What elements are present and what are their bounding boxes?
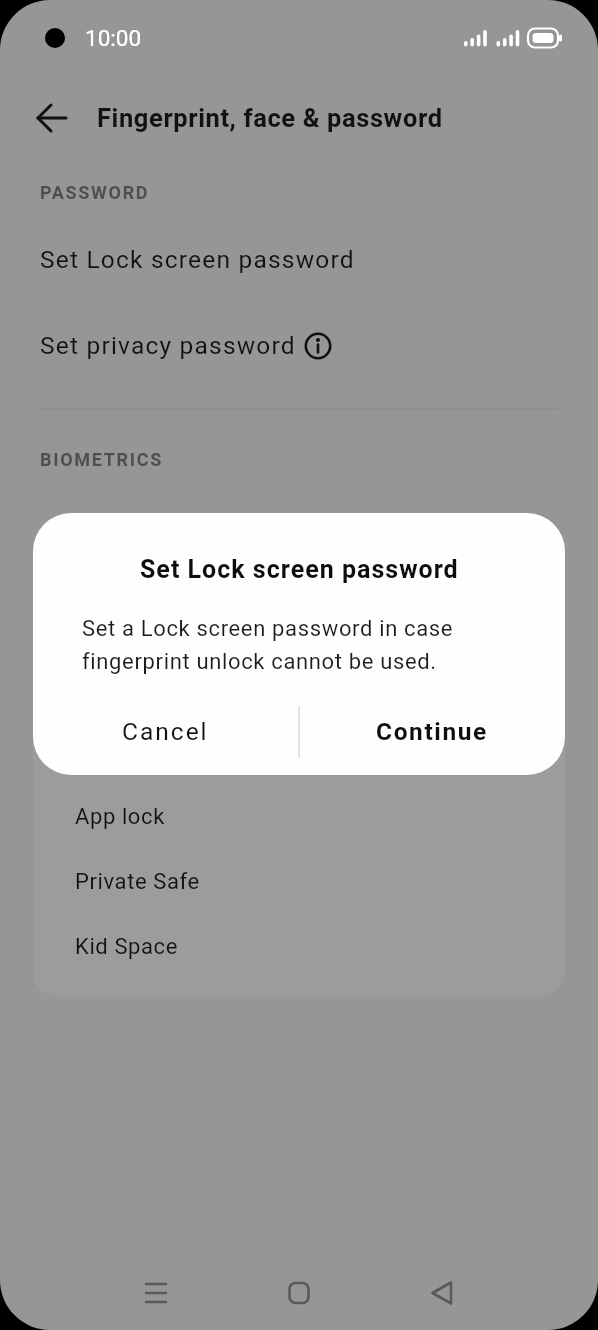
- staticText: Set privacy password: [40, 331, 296, 360]
- button[interactable]: Kid Space: [75, 922, 565, 972]
- staticText: Cancel: [122, 717, 209, 746]
- staticText: PASSWORD: [40, 182, 150, 203]
- staticText: Continue: [376, 717, 488, 746]
- button[interactable]: Continue: [299, 706, 565, 756]
- button[interactable]: [419, 1271, 463, 1315]
- staticText: Set a Lock screen password in case finge…: [82, 616, 454, 674]
- staticText: Set Lock screen password: [140, 555, 459, 584]
- button[interactable]: Set privacy password: [40, 320, 558, 370]
- staticText: BIOMETRICS: [40, 449, 163, 470]
- button[interactable]: Set Lock screen password: [40, 234, 558, 284]
- button[interactable]: [30, 100, 74, 136]
- staticText: Kid Space: [75, 934, 178, 960]
- staticText: Fingerprint, face & password: [97, 103, 443, 133]
- staticText: Private Safe: [75, 869, 200, 895]
- button[interactable]: Cancel: [33, 706, 298, 756]
- button[interactable]: [134, 1271, 178, 1315]
- button[interactable]: App lock: [75, 792, 565, 842]
- staticText: App lock: [75, 804, 165, 830]
- button[interactable]: Private Safe: [75, 857, 565, 907]
- button[interactable]: [277, 1271, 321, 1315]
- staticText: 10:00: [85, 25, 142, 51]
- staticText: Set Lock screen password: [40, 245, 355, 274]
